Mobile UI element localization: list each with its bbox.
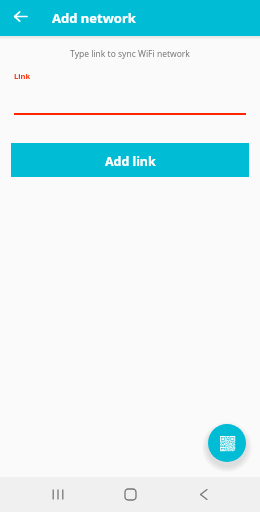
staticText: Type link to sync WiFi network [0, 48, 260, 60]
button[interactable]: Back [191, 477, 216, 512]
button[interactable]: Add link [11, 143, 249, 177]
staticText: Link [14, 71, 31, 81]
staticText: Add network [52, 9, 136, 27]
button[interactable]: Back [7, 3, 34, 30]
staticText: Add link [105, 153, 156, 170]
button[interactable]: Home [118, 477, 143, 512]
button[interactable]: Scan QR code [208, 424, 246, 462]
button[interactable]: Recent apps [45, 477, 70, 512]
